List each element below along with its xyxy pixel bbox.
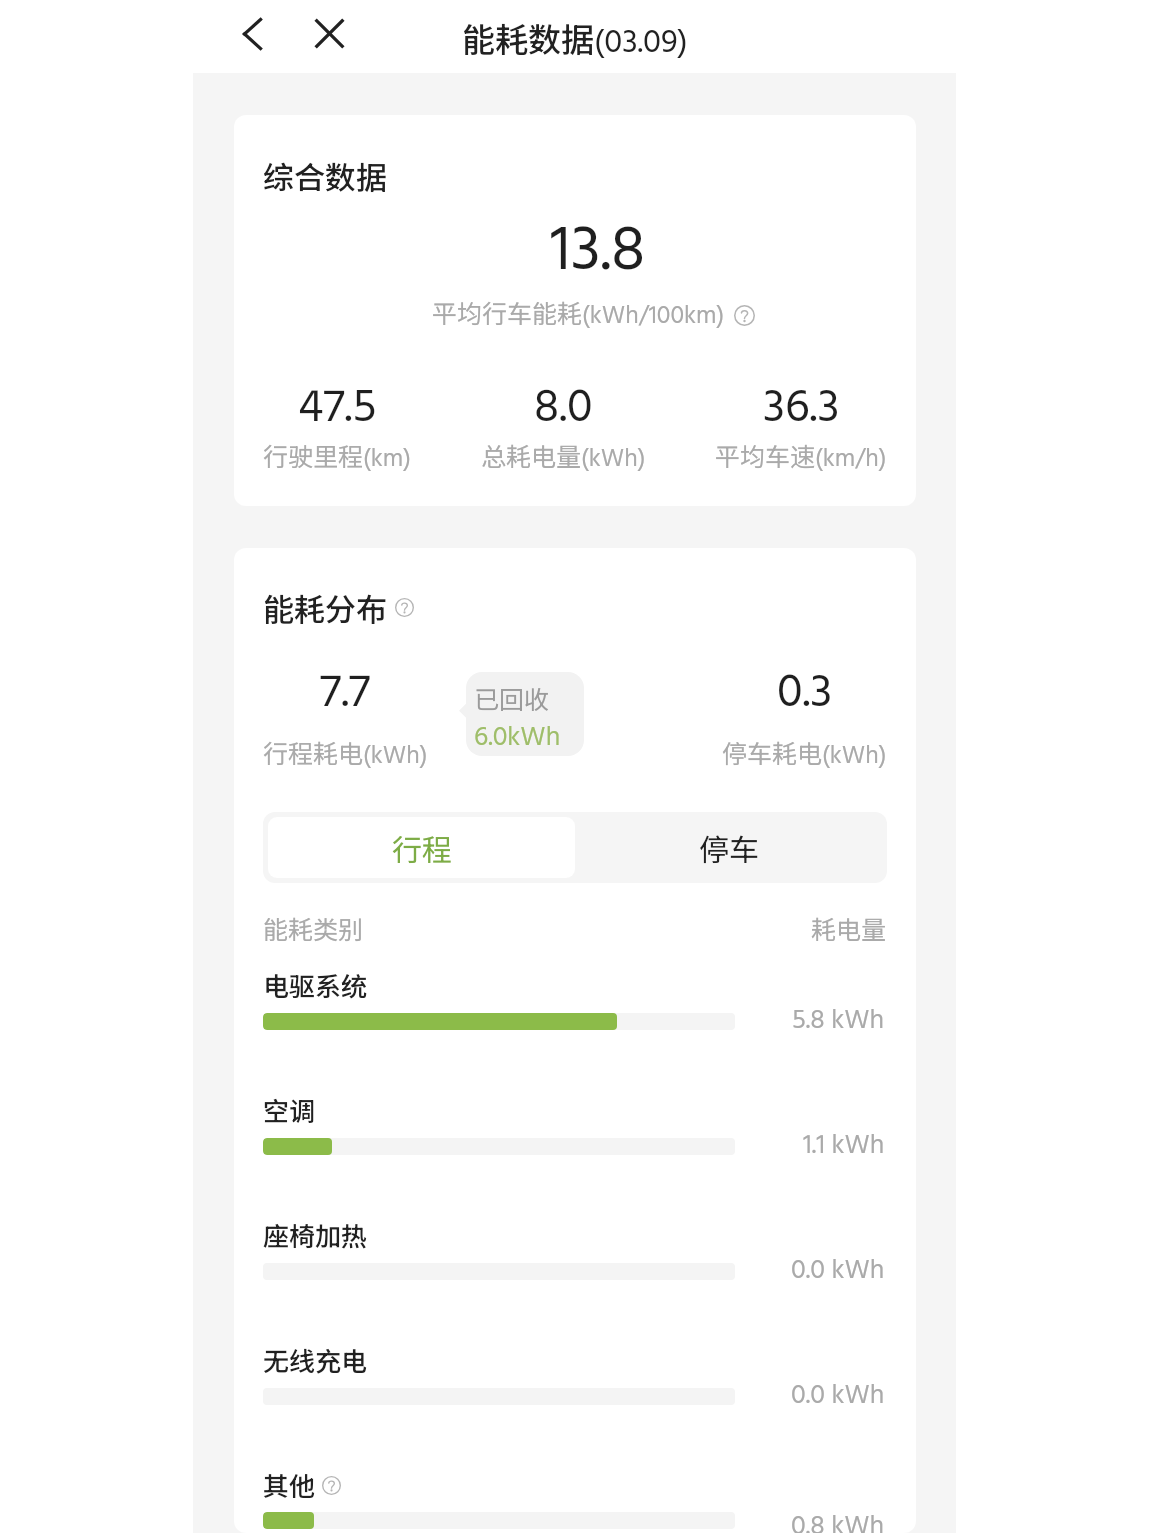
- staticText: 36.3: [763, 371, 840, 446]
- staticText: 座椅加热: [263, 1216, 368, 1254]
- staticText: 综合数据: [263, 153, 387, 198]
- staticText: 6.0kWh: [474, 717, 561, 756]
- staticText: 5.8 kWh: [792, 1000, 885, 1043]
- staticText: 0.8 kWh: [791, 1506, 885, 1533]
- staticText: 已回收: [474, 680, 550, 716]
- staticText: 13.8: [550, 201, 646, 303]
- staticText: 0.0 kWh: [791, 1250, 885, 1293]
- button[interactable]: Close: [308, 12, 351, 55]
- staticText: 1.1 kWh: [803, 1125, 885, 1168]
- staticText: 0.0 kWh: [791, 1375, 885, 1418]
- staticText: 47.5: [298, 371, 377, 446]
- staticText: 空调: [263, 1091, 316, 1129]
- staticText: 停车: [699, 826, 759, 869]
- staticText: 8.0: [534, 371, 593, 446]
- staticText: 能耗数据(03.09): [462, 14, 688, 70]
- staticText: 7.7: [320, 656, 371, 731]
- staticText: 其他: [263, 1466, 316, 1504]
- button[interactable]: 能耗分布说明: [395, 598, 414, 617]
- staticText: 无线充电: [263, 1341, 368, 1379]
- staticText: 行程: [392, 826, 452, 869]
- staticText: 总耗电量(kWh): [481, 437, 646, 480]
- button[interactable]: 行程: [268, 817, 575, 878]
- button[interactable]: 其他说明: [322, 1476, 341, 1495]
- staticText: 平均行车能耗(kWh/100km): [432, 294, 725, 337]
- staticText: 行驶里程(km): [263, 437, 411, 480]
- staticText: 能耗分布: [263, 585, 387, 630]
- staticText: 平均车速(km/h): [715, 437, 887, 480]
- staticText: 行程耗电(kWh): [263, 734, 428, 777]
- staticText: 停车耗电(kWh): [722, 734, 887, 777]
- staticText: 0.3: [777, 656, 833, 731]
- button[interactable]: 停车: [575, 817, 882, 878]
- staticText: 电驱系统: [263, 966, 368, 1004]
- staticText: 耗电量: [811, 910, 887, 946]
- staticText: 能耗类别: [263, 910, 364, 946]
- button[interactable]: 平均行车能耗说明: [734, 305, 755, 326]
- button[interactable]: Back: [231, 12, 274, 55]
